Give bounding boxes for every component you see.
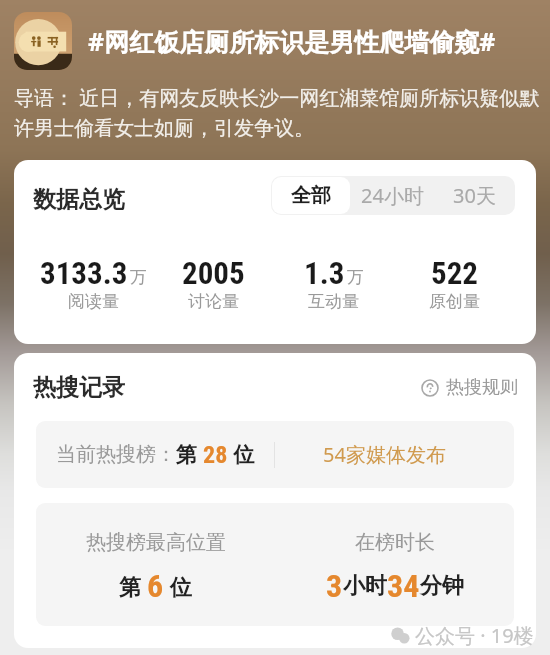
staticText: 热搜规则 bbox=[446, 376, 518, 399]
staticText: 导语： 近日，有网友反映长沙一网红湘菜馆厕所标识疑似默许男士偷看女士如厕，引发争… bbox=[14, 84, 542, 141]
staticText: 54家媒体发布 bbox=[323, 441, 446, 468]
button[interactable]: 30天 bbox=[433, 176, 515, 215]
staticText: 位 bbox=[164, 571, 192, 601]
staticText: 分钟 bbox=[420, 572, 464, 600]
staticText: 当前热搜榜： bbox=[56, 442, 176, 467]
button[interactable]: 24小时 bbox=[351, 176, 433, 215]
staticText: 第 bbox=[119, 571, 147, 601]
staticText: 30天 bbox=[453, 182, 496, 209]
staticText: 位 bbox=[228, 440, 255, 469]
other: WeChat bbox=[390, 625, 411, 646]
staticText: 第 bbox=[176, 440, 203, 469]
staticText: 28 bbox=[203, 441, 228, 469]
staticText: 3133.3 bbox=[40, 255, 128, 291]
staticText: 2005 bbox=[182, 255, 245, 291]
staticText: 6 bbox=[147, 567, 164, 605]
staticText: 互动量 bbox=[308, 291, 359, 312]
staticText: 公众号 · 19楼 bbox=[415, 622, 534, 649]
staticText: 万 bbox=[130, 267, 147, 288]
staticText: 阅读量 bbox=[68, 291, 119, 312]
staticText: 热搜记录 bbox=[33, 373, 125, 402]
staticText: 1.3 bbox=[304, 255, 345, 291]
button[interactable]: 全部 bbox=[272, 177, 350, 214]
staticText: 24小时 bbox=[361, 182, 424, 209]
staticText: 万 bbox=[347, 267, 364, 288]
staticText: 522 bbox=[431, 255, 478, 291]
staticText: 讨论量 bbox=[188, 291, 239, 312]
staticText: 数据总览 bbox=[33, 185, 125, 214]
staticText: 热搜榜最高位置 bbox=[86, 530, 226, 555]
staticText: 原创量 bbox=[429, 291, 480, 312]
other: Topic image bbox=[14, 12, 72, 70]
staticText: 在榜时长 bbox=[355, 530, 435, 555]
staticText: 全部 bbox=[291, 183, 331, 208]
staticText: 3 bbox=[326, 567, 343, 605]
staticText: 34 bbox=[387, 567, 420, 605]
staticText: 小时 bbox=[343, 572, 387, 600]
staticText: #网红饭店厕所标识是男性爬墙偷窥# bbox=[88, 24, 496, 58]
button[interactable]: 热搜规则 bbox=[421, 376, 518, 399]
